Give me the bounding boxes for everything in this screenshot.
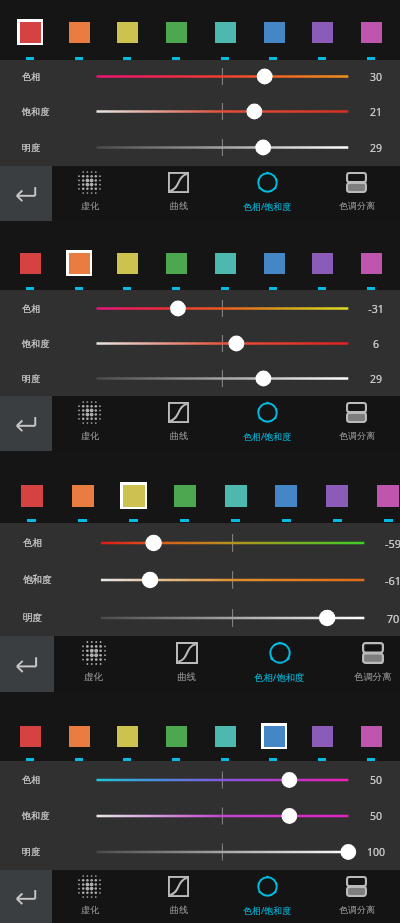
- staticText: 饱和度: [22, 106, 50, 118]
- button[interactable]: 虚化: [45, 166, 134, 221]
- staticText: 色相: [23, 537, 43, 549]
- button[interactable]: 虚化: [45, 396, 134, 451]
- staticText: 50: [358, 773, 394, 787]
- button[interactable]: [120, 482, 147, 509]
- staticText: 饱和度: [23, 574, 52, 586]
- button[interactable]: [17, 19, 43, 45]
- staticText: 色调分离: [354, 671, 392, 683]
- staticText: 50: [358, 809, 394, 823]
- button[interactable]: 色调分离: [312, 166, 400, 221]
- button[interactable]: [261, 250, 287, 276]
- button[interactable]: 色相/饱和度: [223, 166, 312, 221]
- button[interactable]: 虚化: [47, 636, 140, 692]
- staticText: 色相: [22, 774, 41, 786]
- button[interactable]: Back: [0, 396, 52, 451]
- staticText: 明度: [22, 142, 41, 154]
- staticText: -61: [374, 573, 400, 588]
- staticText: 100: [358, 845, 394, 859]
- staticText: 70: [374, 611, 400, 626]
- staticText: 色相: [22, 71, 41, 83]
- staticText: 虚化: [84, 671, 103, 683]
- staticText: 饱和度: [22, 810, 50, 822]
- button[interactable]: [163, 250, 189, 276]
- staticText: 饱和度: [22, 338, 50, 350]
- staticText: 明度: [23, 612, 43, 624]
- button[interactable]: 色相/饱和度: [223, 396, 312, 451]
- staticText: 曲线: [170, 904, 188, 915]
- staticText: 色相/饱和度: [243, 904, 292, 916]
- staticText: 色调分离: [339, 430, 375, 441]
- button[interactable]: 曲线: [140, 636, 233, 692]
- button[interactable]: Back: [0, 870, 52, 923]
- staticText: 虚化: [81, 200, 99, 211]
- button[interactable]: [323, 482, 350, 509]
- staticText: -31: [358, 302, 394, 316]
- button[interactable]: [358, 250, 384, 276]
- button[interactable]: [261, 19, 287, 45]
- staticText: 色相/饱和度: [243, 200, 292, 212]
- button[interactable]: [18, 482, 45, 509]
- button[interactable]: [114, 19, 140, 45]
- button[interactable]: [163, 723, 189, 749]
- staticText: 色相/饱和度: [243, 430, 292, 442]
- staticText: 色相/饱和度: [254, 671, 305, 684]
- button[interactable]: 曲线: [134, 870, 223, 923]
- button[interactable]: Back: [0, 636, 54, 692]
- button[interactable]: [309, 250, 335, 276]
- button[interactable]: [69, 482, 96, 509]
- button[interactable]: [66, 723, 92, 749]
- button[interactable]: [66, 250, 92, 276]
- button[interactable]: [212, 723, 238, 749]
- button[interactable]: [309, 723, 335, 749]
- button[interactable]: [17, 723, 43, 749]
- staticText: 虚化: [81, 430, 99, 441]
- button[interactable]: [358, 723, 384, 749]
- button[interactable]: [222, 482, 249, 509]
- staticText: 虚化: [81, 904, 99, 915]
- staticText: 30: [358, 70, 394, 84]
- button[interactable]: 曲线: [134, 396, 223, 451]
- button[interactable]: 色调分离: [312, 396, 400, 451]
- button[interactable]: [309, 19, 335, 45]
- button[interactable]: [272, 482, 299, 509]
- button[interactable]: [374, 482, 400, 509]
- button[interactable]: 虚化: [45, 870, 134, 923]
- button[interactable]: 色调分离: [326, 636, 400, 692]
- staticText: 色调分离: [339, 904, 375, 915]
- button[interactable]: [66, 19, 92, 45]
- button[interactable]: [114, 723, 140, 749]
- button[interactable]: [114, 250, 140, 276]
- staticText: 明度: [22, 846, 41, 858]
- staticText: -59: [374, 536, 400, 551]
- staticText: 明度: [22, 373, 41, 385]
- button[interactable]: [212, 19, 238, 45]
- button[interactable]: [163, 19, 189, 45]
- staticText: 6: [358, 337, 394, 351]
- button[interactable]: [212, 250, 238, 276]
- staticText: 色相: [22, 303, 41, 315]
- button[interactable]: [261, 723, 287, 749]
- button[interactable]: 色相/饱和度: [233, 636, 326, 692]
- staticText: 色调分离: [339, 200, 375, 211]
- staticText: 29: [358, 141, 394, 155]
- button[interactable]: 色相/饱和度: [223, 870, 312, 923]
- button[interactable]: [171, 482, 198, 509]
- staticText: 21: [358, 105, 394, 119]
- staticText: 曲线: [177, 671, 196, 683]
- button[interactable]: 色调分离: [312, 870, 400, 923]
- staticText: 曲线: [170, 430, 188, 441]
- staticText: 29: [358, 372, 394, 386]
- button[interactable]: [17, 250, 43, 276]
- button[interactable]: [358, 19, 384, 45]
- button[interactable]: 曲线: [134, 166, 223, 221]
- staticText: 曲线: [170, 200, 188, 211]
- button[interactable]: Back: [0, 166, 52, 221]
